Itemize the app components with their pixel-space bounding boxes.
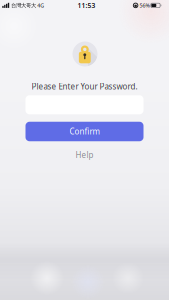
button[interactable]: Confirm xyxy=(25,122,143,141)
staticText: Confirm xyxy=(69,126,99,137)
staticText: 56% xyxy=(140,2,150,9)
staticText: 4G xyxy=(37,2,44,9)
staticText: Please Enter Your Password. xyxy=(31,81,137,92)
staticText: 台灣大哥大 xyxy=(11,2,36,9)
staticText: Help xyxy=(75,150,93,160)
staticText: 11:53 xyxy=(77,1,95,10)
button[interactable]: Help xyxy=(75,150,93,160)
